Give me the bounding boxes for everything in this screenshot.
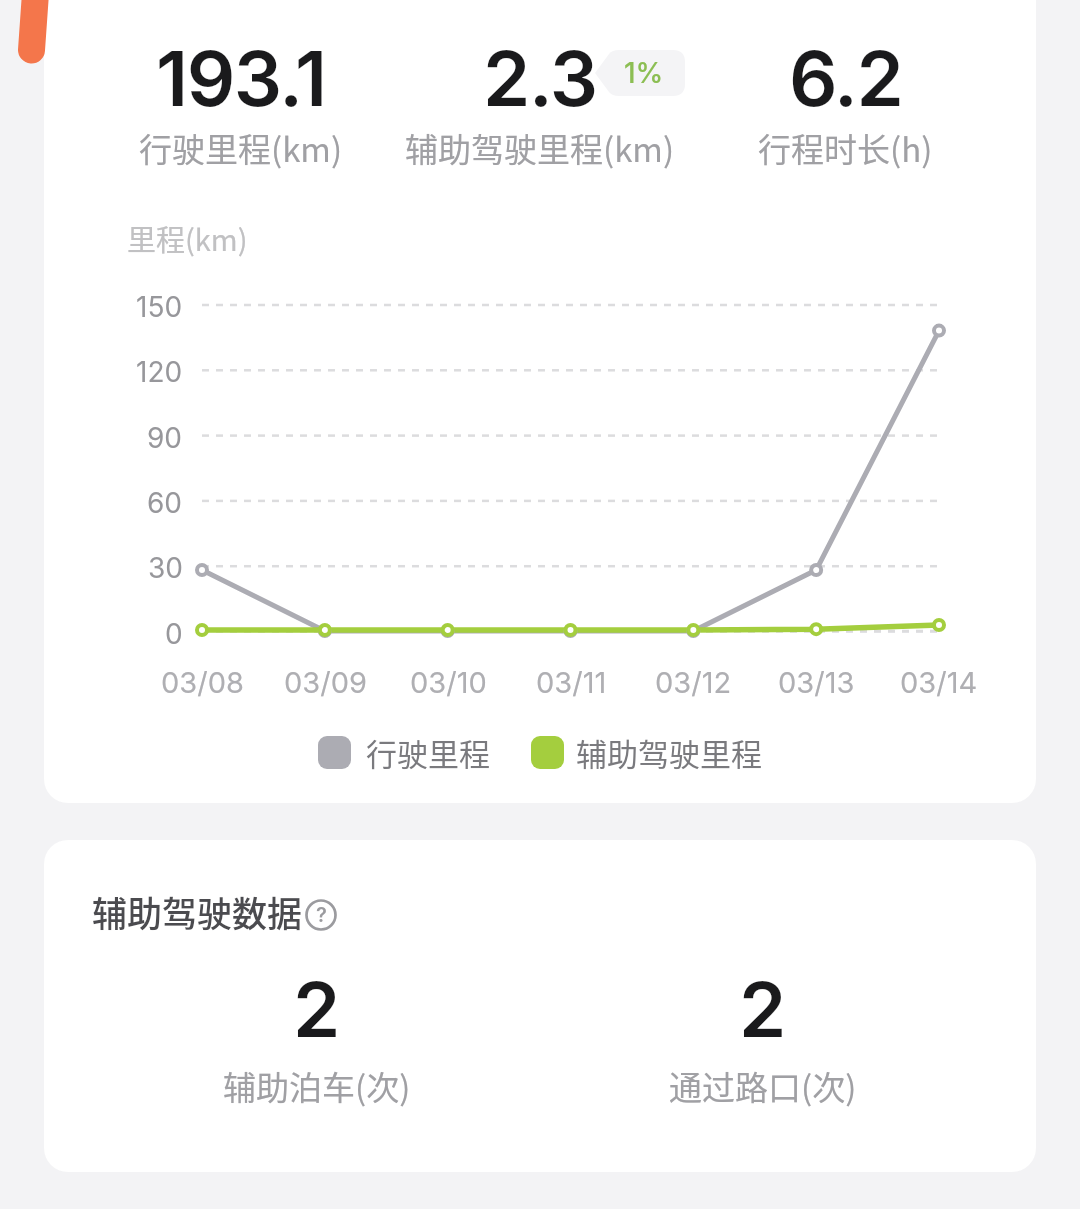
- staticText: 辅助驾驶数据: [92, 886, 303, 937]
- staticText: 2: [293, 963, 341, 1055]
- staticText: 60: [147, 486, 183, 520]
- button[interactable]: 193.1: [92, 32, 390, 172]
- staticText: 2: [739, 963, 787, 1055]
- staticText: 03/11: [536, 665, 607, 700]
- staticText: 通过路口(次): [669, 1062, 857, 1110]
- staticText: 行驶里程(km): [139, 124, 343, 172]
- staticText: 90: [147, 421, 183, 455]
- button[interactable]: 2: [94, 963, 540, 1110]
- staticText: 03/13: [778, 665, 855, 700]
- staticText: 辅助驾驶里程(km): [405, 124, 675, 172]
- staticText: 2.3: [483, 32, 597, 124]
- staticText: ?: [316, 903, 327, 927]
- button[interactable]: 6.2: [696, 32, 995, 172]
- staticText: 6.2: [789, 32, 903, 124]
- staticText: 1%: [624, 56, 664, 90]
- staticText: 辅助驾驶里程: [576, 730, 762, 775]
- button[interactable]: ?: [305, 899, 337, 931]
- staticText: 03/14: [900, 665, 978, 700]
- button[interactable]: 2.3: [390, 32, 689, 172]
- staticText: 03/09: [284, 665, 367, 700]
- staticText: 03/10: [410, 665, 487, 700]
- staticText: 03/08: [161, 665, 244, 700]
- staticText: 03/12: [655, 665, 732, 700]
- button[interactable]: 2: [540, 963, 986, 1110]
- staticText: 30: [148, 551, 183, 585]
- staticText: 0: [165, 617, 183, 651]
- staticText: 193.1: [156, 32, 326, 124]
- staticText: 120: [136, 355, 183, 389]
- staticText: 辅助泊车(次): [223, 1062, 411, 1110]
- staticText: 150: [136, 290, 183, 324]
- staticText: 行程时长(h): [758, 124, 933, 172]
- staticText: 里程(km): [127, 217, 248, 259]
- staticText: 行驶里程: [366, 730, 490, 775]
